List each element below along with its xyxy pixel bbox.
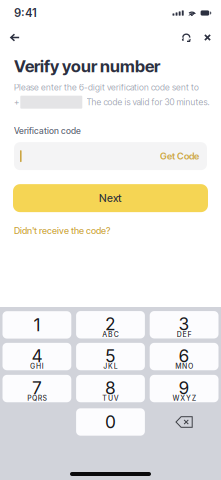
staticText: Get Code <box>160 150 199 162</box>
staticText: Verify your number <box>14 56 160 76</box>
staticText: Verification code <box>14 126 81 136</box>
button[interactable]: Get Code <box>152 142 207 170</box>
staticText: GHI <box>30 362 44 371</box>
staticText: + <box>14 97 19 107</box>
staticText: 4 <box>31 345 42 366</box>
staticText: 0 <box>105 411 116 432</box>
button[interactable]: Didn't receive the code? <box>0 212 124 239</box>
button[interactable]: 1 <box>2 311 71 339</box>
button[interactable]: 9 <box>150 375 218 402</box>
staticText: 7 <box>32 377 42 398</box>
button[interactable]: Support <box>176 26 197 48</box>
button[interactable]: 7 <box>2 375 71 402</box>
staticText: MNO <box>175 362 193 371</box>
staticText: 1 <box>33 314 40 335</box>
staticText: Please enter the 6-digit verification co… <box>14 82 199 93</box>
staticText: PQRS <box>27 394 47 403</box>
button[interactable]: Close <box>197 26 218 48</box>
button[interactable]: Back <box>2 26 28 48</box>
button[interactable]: 0 <box>76 408 145 436</box>
staticText: 6 <box>179 345 190 366</box>
button[interactable]: 6 <box>150 343 218 370</box>
staticText: TUV <box>102 394 119 403</box>
staticText: Didn't receive the code? <box>14 225 110 236</box>
staticText: 9:41 <box>14 6 37 20</box>
staticText: 8 <box>105 377 116 398</box>
button[interactable]: 5 <box>76 343 145 370</box>
button[interactable]: Next <box>13 184 208 212</box>
button[interactable]: Delete <box>150 408 218 436</box>
staticText: JKL <box>103 362 118 371</box>
staticText: 9 <box>179 377 190 398</box>
button[interactable]: 8 <box>76 375 145 402</box>
button[interactable]: 3 <box>150 311 218 339</box>
staticText: WXYZ <box>172 394 196 403</box>
staticText: 3 <box>179 314 190 335</box>
button[interactable]: 4 <box>2 343 71 370</box>
staticText: ABC <box>102 330 119 339</box>
staticText: Next <box>99 192 122 205</box>
staticText: DEF <box>177 330 191 339</box>
staticText: The code is valid for 30 minutes. <box>86 97 209 107</box>
staticText: 5 <box>105 345 116 366</box>
button[interactable]: 2 <box>76 311 145 339</box>
staticText: 2 <box>105 314 116 335</box>
